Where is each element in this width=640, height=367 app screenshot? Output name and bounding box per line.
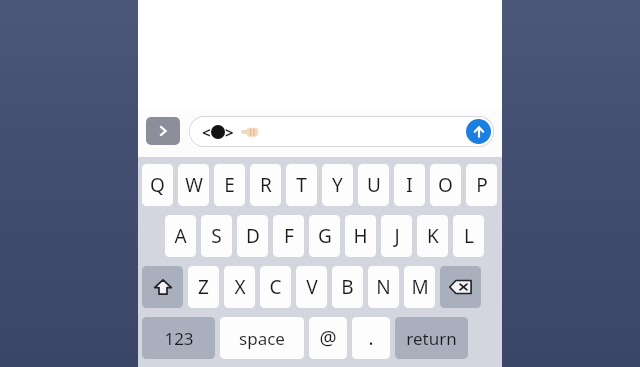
staticText: F bbox=[284, 223, 294, 249]
button[interactable]: J bbox=[381, 215, 412, 257]
button[interactable]: W bbox=[178, 164, 209, 206]
staticText: I bbox=[406, 172, 413, 198]
staticText: Z bbox=[198, 274, 209, 300]
button[interactable]: S bbox=[201, 215, 232, 257]
button[interactable]: A bbox=[165, 215, 196, 257]
button[interactable]: C bbox=[260, 266, 291, 308]
button[interactable]: U bbox=[358, 164, 389, 206]
staticText: P bbox=[476, 172, 488, 198]
staticText: V bbox=[306, 274, 318, 300]
staticText: J bbox=[394, 223, 400, 249]
button[interactable]: H bbox=[345, 215, 376, 257]
button[interactable]: T bbox=[286, 164, 317, 206]
button[interactable]: M bbox=[404, 266, 435, 308]
staticText: Y bbox=[332, 172, 343, 198]
button[interactable]: D bbox=[237, 215, 268, 257]
button[interactable]: Z bbox=[188, 266, 219, 308]
staticText: A bbox=[174, 223, 187, 249]
staticText: H bbox=[353, 223, 368, 249]
button[interactable]: space bbox=[220, 317, 304, 359]
button[interactable]: Delete bbox=[440, 266, 481, 308]
button[interactable]: . bbox=[352, 317, 390, 359]
staticText: C bbox=[269, 274, 282, 300]
staticText: L bbox=[464, 223, 474, 249]
staticText: E bbox=[224, 172, 235, 198]
staticText: Q bbox=[150, 172, 165, 198]
button[interactable]: Shift bbox=[142, 266, 183, 308]
staticText: T bbox=[296, 172, 307, 198]
button[interactable]: K bbox=[417, 215, 448, 257]
staticText: 123 bbox=[164, 327, 194, 350]
button[interactable]: L bbox=[453, 215, 484, 257]
button[interactable]: Send bbox=[466, 119, 491, 144]
staticText: O bbox=[438, 172, 453, 198]
staticText: @ bbox=[319, 325, 337, 351]
staticText: W bbox=[185, 172, 203, 198]
button[interactable]: X bbox=[224, 266, 255, 308]
staticText: > bbox=[225, 122, 234, 142]
staticText: R bbox=[260, 172, 272, 198]
button[interactable]: @ bbox=[309, 317, 347, 359]
button[interactable]: Apps bbox=[146, 117, 180, 145]
button[interactable]: P bbox=[466, 164, 497, 206]
staticText: space bbox=[239, 327, 285, 350]
staticText: M bbox=[411, 274, 429, 300]
staticText: N bbox=[376, 274, 391, 300]
button[interactable]: N bbox=[368, 266, 399, 308]
button[interactable]: G bbox=[309, 215, 340, 257]
button[interactable]: Q bbox=[142, 164, 173, 206]
button[interactable]: return bbox=[395, 317, 468, 359]
button[interactable]: F bbox=[273, 215, 304, 257]
staticText: . bbox=[368, 325, 374, 351]
button[interactable]: O bbox=[430, 164, 461, 206]
staticText: return bbox=[406, 327, 457, 350]
staticText: < bbox=[202, 122, 211, 142]
button[interactable]: B bbox=[332, 266, 363, 308]
button[interactable]: < bbox=[189, 116, 494, 147]
staticText: X bbox=[234, 274, 246, 300]
button[interactable]: V bbox=[296, 266, 327, 308]
staticText: D bbox=[246, 223, 260, 249]
button[interactable]: R bbox=[250, 164, 281, 206]
staticText: U bbox=[367, 172, 381, 198]
staticText: S bbox=[211, 223, 222, 249]
button[interactable]: E bbox=[214, 164, 245, 206]
button[interactable]: 123 bbox=[142, 317, 215, 359]
staticText: B bbox=[341, 274, 354, 300]
staticText: K bbox=[427, 223, 439, 249]
button[interactable]: Y bbox=[322, 164, 353, 206]
button[interactable]: I bbox=[394, 164, 425, 206]
staticText: G bbox=[318, 223, 332, 249]
